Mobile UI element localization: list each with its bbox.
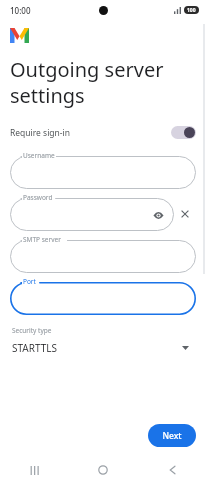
staticText: Outgoing server settings [10,56,164,108]
other: Require sign-in toggle [171,126,196,139]
button[interactable]: Port [10,277,196,315]
staticText: SMTP server [23,235,61,244]
staticText: 10:00 [10,5,31,16]
button[interactable]: Recent apps [17,459,51,481]
staticText: Next [162,430,182,442]
staticText: Password [23,193,53,202]
staticText: Security type [12,326,52,335]
button[interactable]: Username [10,151,196,189]
button[interactable]: Clear password [174,193,196,231]
staticText: Port [23,277,36,286]
button[interactable]: Security type [10,326,196,355]
button[interactable]: Next [148,424,196,447]
staticText: 100 [187,7,196,14]
staticText: Require sign-in [10,127,71,139]
button[interactable]: Show password [151,208,165,222]
button[interactable]: Require sign-in [10,124,196,141]
button[interactable]: Password [10,193,174,231]
staticText: STARTTLS [12,341,58,355]
staticText: Username [23,151,55,160]
button[interactable]: Home [86,459,120,481]
button[interactable]: SMTP server [10,235,196,273]
button[interactable]: Back [155,459,189,481]
